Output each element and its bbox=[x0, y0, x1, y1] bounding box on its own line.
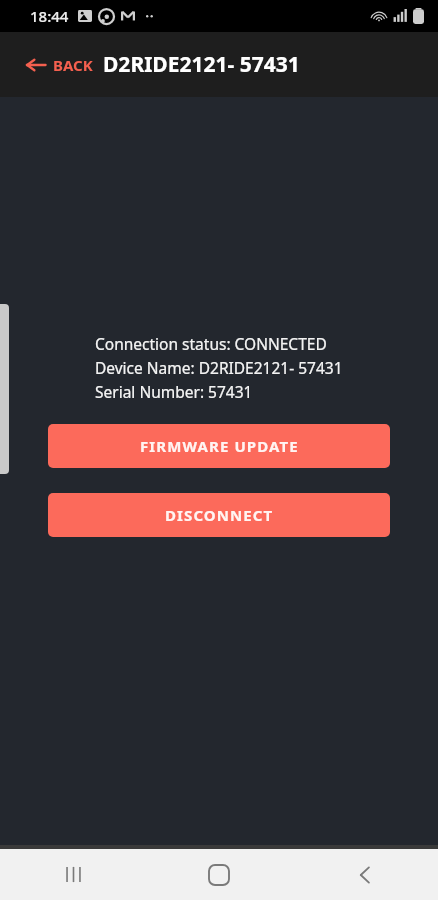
staticText: FIRMWARE UPDATE bbox=[140, 436, 299, 456]
button[interactable]: Back bbox=[292, 849, 438, 900]
staticText: Serial Number: 57431 bbox=[95, 381, 253, 402]
staticText: Connection status: CONNECTED bbox=[95, 333, 327, 354]
button[interactable]: Recent apps bbox=[0, 849, 146, 900]
staticText: 18:44 bbox=[30, 6, 69, 26]
staticText: Device Name: D2RIDE2121- 57431 bbox=[95, 357, 343, 378]
button[interactable]: Home bbox=[146, 849, 292, 900]
button[interactable]: DISCONNECT bbox=[48, 493, 390, 537]
button[interactable]: Back bbox=[22, 49, 99, 81]
staticText: DISCONNECT bbox=[165, 505, 274, 525]
staticText: BACK bbox=[53, 55, 93, 75]
button[interactable]: FIRMWARE UPDATE bbox=[48, 424, 390, 468]
staticText: D2RIDE2121- 57431 bbox=[103, 50, 300, 79]
